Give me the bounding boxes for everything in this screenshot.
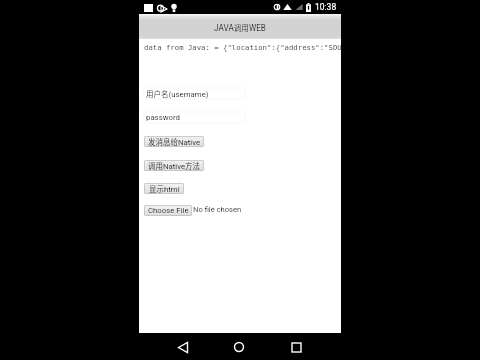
button[interactable]: 显示html	[144, 183, 184, 194]
button[interactable]: 调用Native方法	[144, 160, 204, 171]
button[interactable]: Back	[171, 335, 195, 359]
button[interactable]: Recent apps	[284, 335, 308, 359]
staticText: JAVA调用WEB	[214, 22, 266, 33]
staticText: password	[146, 113, 180, 122]
staticText: 发消息给Native	[148, 136, 201, 147]
button[interactable]: JAVA调用WEB	[139, 14, 341, 39]
staticText: 用户名(username)	[146, 88, 209, 99]
staticText: data from Java: = {"location":{"address"…	[144, 43, 342, 51]
button[interactable]: 发消息给Native	[144, 136, 204, 147]
button[interactable]: 用户名(username)	[144, 88, 245, 99]
button[interactable]: Home	[227, 335, 251, 359]
button[interactable]: password	[144, 112, 245, 123]
staticText: Choose File	[148, 206, 189, 215]
staticText: 调用Native方法	[148, 160, 201, 171]
staticText: 10:38	[315, 2, 337, 12]
staticText: No file chosen	[193, 205, 242, 214]
button[interactable]: Choose File	[144, 205, 192, 216]
staticText: 显示html	[149, 183, 180, 194]
